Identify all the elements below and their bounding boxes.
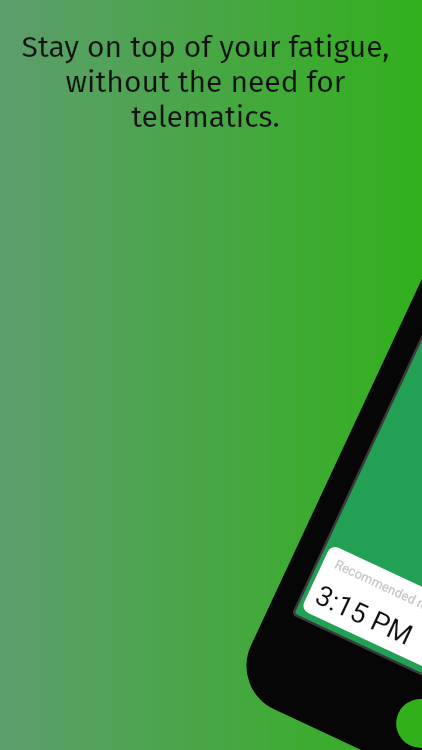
staticText: Stay on top of your fatigue, without the… [13, 29, 398, 135]
